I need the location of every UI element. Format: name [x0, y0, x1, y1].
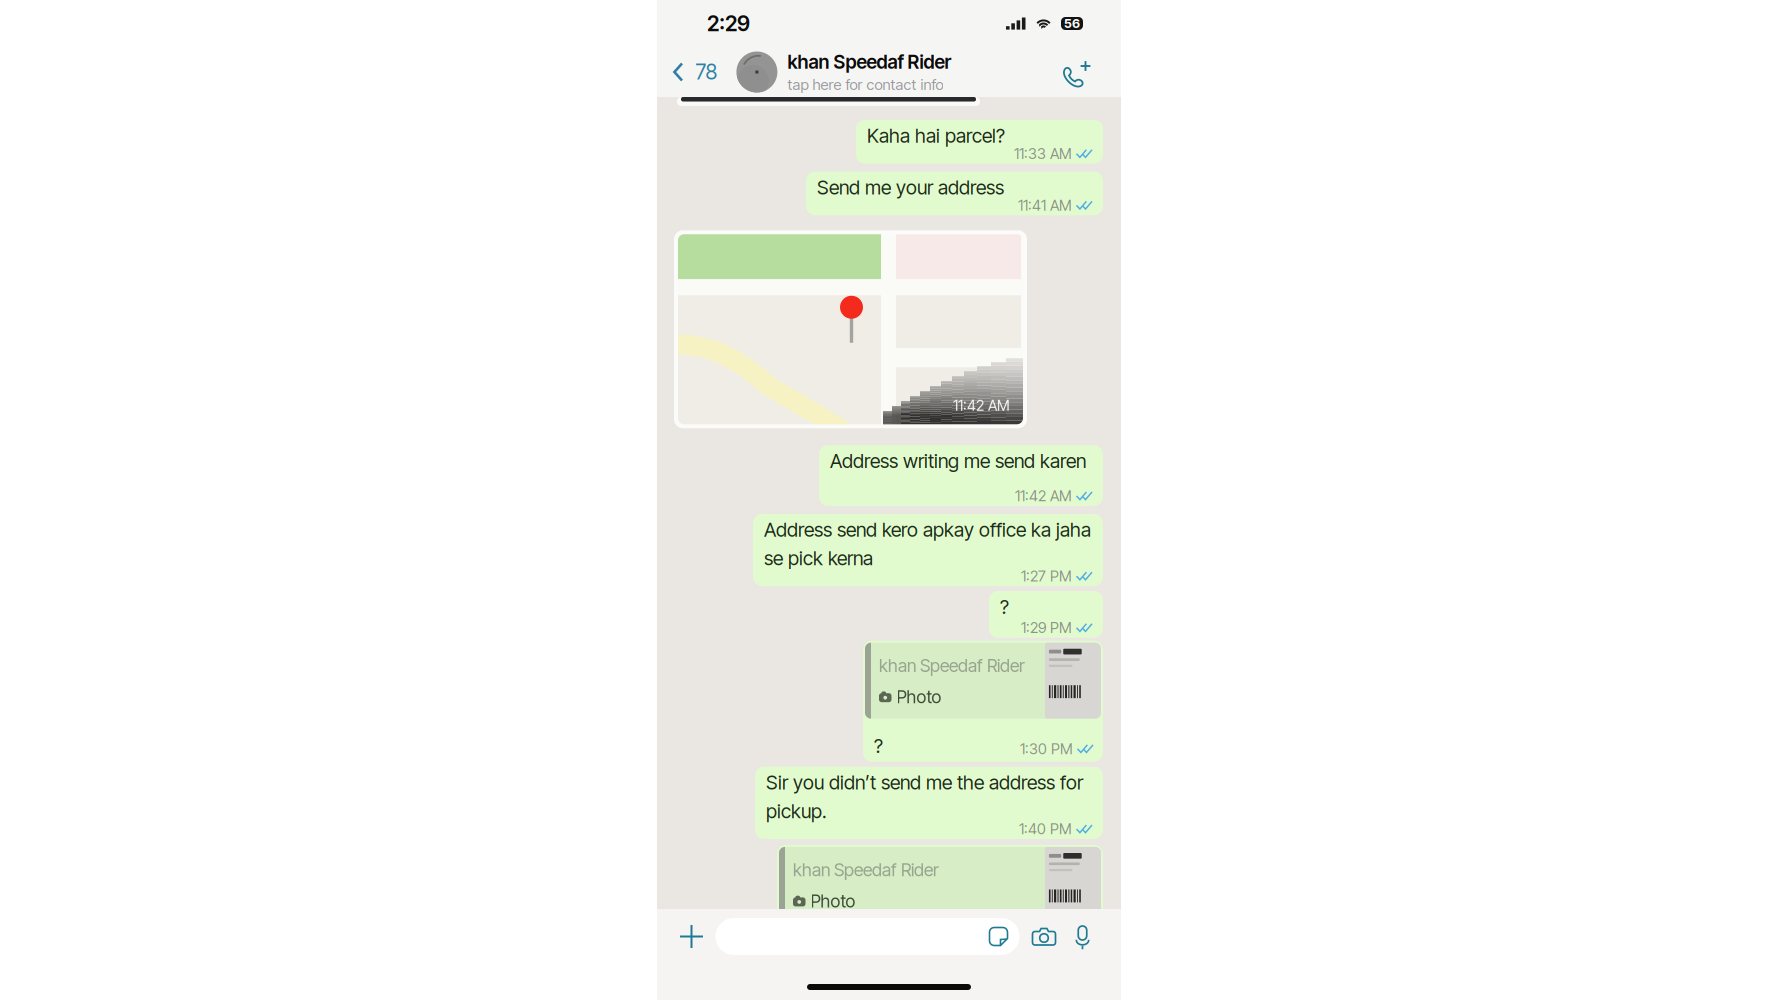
- staticText: Address send kero apkay office ka jaha: [764, 518, 1091, 541]
- button[interactable]: Stickers: [988, 926, 1019, 946]
- button[interactable]: 78: [657, 49, 717, 94]
- staticText: 11:42 AM: [1015, 487, 1072, 505]
- staticText: 11:33 AM: [1014, 145, 1072, 163]
- staticText: 1:29 PM: [1021, 619, 1072, 637]
- staticText: 1:27 PM: [1021, 567, 1072, 585]
- staticText: ?: [1000, 595, 1009, 619]
- staticText: pickup.: [766, 799, 827, 823]
- staticText: tap here for contact info: [787, 75, 943, 93]
- staticText: khan Speedaf Rider: [793, 859, 939, 880]
- staticText: se pick kerna: [764, 546, 873, 570]
- staticText: 11:41 AM: [1018, 196, 1072, 214]
- staticText: Send me your address: [817, 176, 1004, 199]
- button[interactable]: Attach: [679, 918, 715, 954]
- staticText: 56: [1064, 16, 1080, 31]
- staticText: 1:30 PM: [1020, 740, 1073, 758]
- staticText: khan Speedaf Rider: [787, 50, 951, 73]
- staticText: 78: [695, 59, 717, 84]
- staticText: khan Speedaf Rider: [879, 655, 1025, 676]
- staticText: Photo: [896, 686, 941, 707]
- button[interactable]: Camera: [1019, 926, 1070, 946]
- button[interactable]: Voice message: [1070, 924, 1098, 948]
- staticText: 2:29: [707, 11, 750, 36]
- button[interactable]: Audio call: [1059, 58, 1121, 86]
- staticText: Sir you didn’t send me the address for: [766, 771, 1083, 794]
- button[interactable]: khan Speedaf Rider: [717, 50, 1059, 93]
- staticText: 11:42 AM: [953, 396, 1010, 414]
- staticText: Address writing me send karen: [830, 449, 1086, 473]
- staticText: 1:40 PM: [1019, 820, 1072, 838]
- staticText: ?: [874, 734, 883, 758]
- staticText: Kaha hai parcel?: [867, 124, 1005, 148]
- staticText: Photo: [810, 890, 855, 912]
